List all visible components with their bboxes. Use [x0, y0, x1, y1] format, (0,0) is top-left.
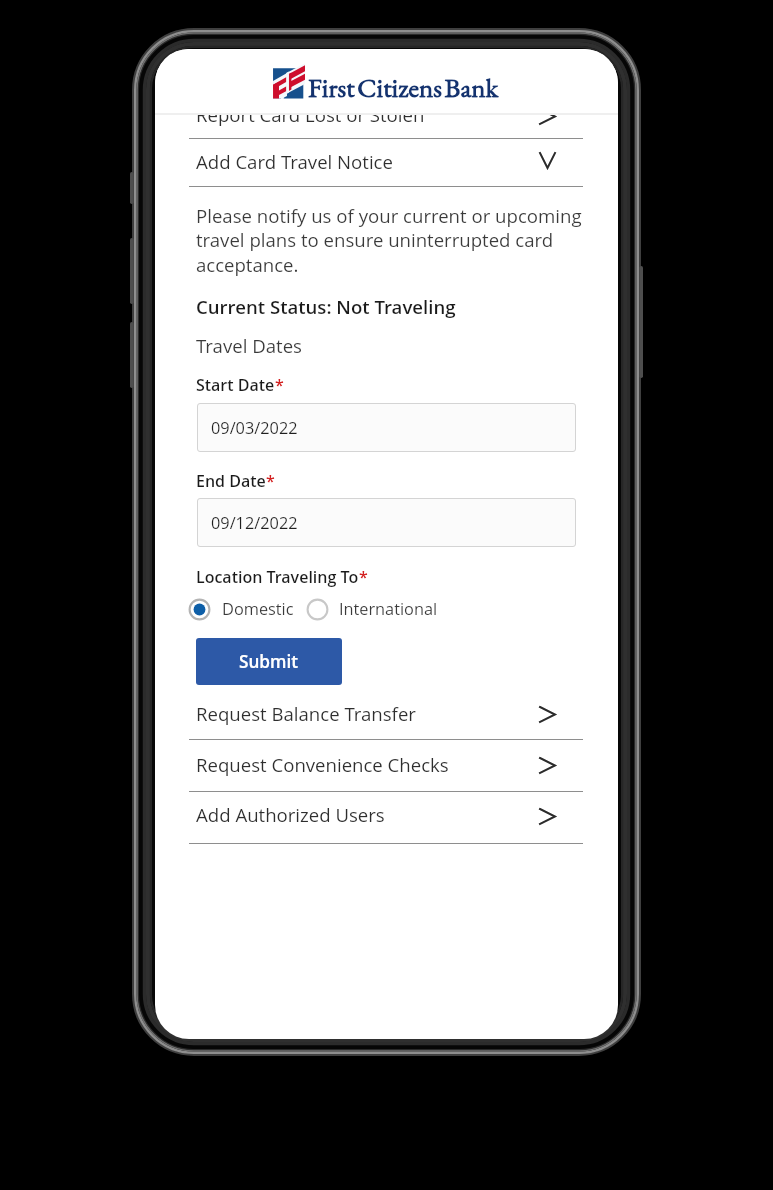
staticText: * — [275, 374, 284, 396]
staticText: Submit — [239, 650, 299, 673]
staticText: International — [339, 598, 438, 620]
staticText: End Date — [196, 470, 266, 492]
staticText: Add Card Travel Notice — [196, 149, 393, 174]
staticText: Start Date — [196, 374, 275, 396]
staticText: Please notify us of your current or upco… — [196, 203, 584, 278]
staticText: Request Balance Transfer — [196, 701, 416, 726]
button[interactable] — [189, 741, 583, 791]
staticText: 09/03/2022 — [211, 417, 298, 439]
button[interactable]: Domestic — [188, 596, 294, 622]
staticText: Request Convenience Checks — [196, 752, 449, 777]
button[interactable] — [189, 88, 583, 138]
staticText: Current Status: Not Traveling — [196, 294, 456, 319]
button[interactable] — [189, 136, 583, 186]
button[interactable]: 09/12/2022 — [197, 498, 576, 547]
staticText: 09/12/2022 — [211, 512, 298, 534]
staticText: Add Authorized Users — [196, 802, 385, 827]
staticText: Travel Dates — [196, 333, 302, 358]
other: Collapse section — [540, 153, 555, 168]
other: Open Add Authorized Users — [540, 809, 555, 824]
button[interactable]: 09/03/2022 — [197, 403, 576, 452]
staticText: Domestic — [222, 598, 294, 620]
staticText: First Citizens Bank — [308, 70, 499, 105]
button[interactable]: Submit — [196, 638, 342, 685]
staticText: * — [359, 566, 368, 588]
button[interactable]: International — [306, 596, 438, 622]
staticText: * — [266, 470, 275, 492]
other: Open Request Balance Transfer — [540, 707, 555, 722]
staticText: Report Card Lost or Stolen — [196, 102, 425, 127]
staticText: Location Traveling To — [196, 566, 359, 588]
button[interactable] — [189, 689, 583, 739]
other: Open Report Card Lost or Stolen — [540, 109, 555, 124]
other: Open Request Convenience Checks — [540, 758, 555, 773]
button[interactable] — [189, 793, 583, 843]
